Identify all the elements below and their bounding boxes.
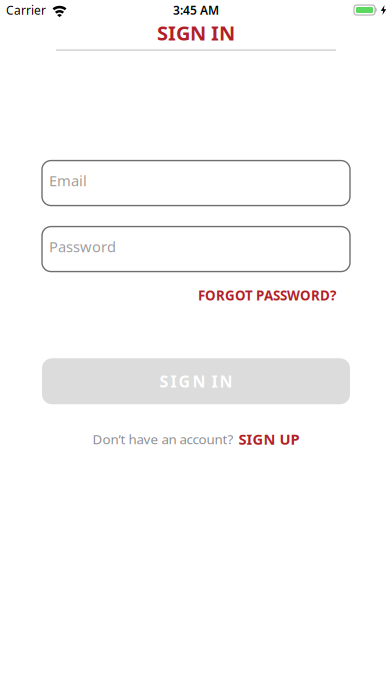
button[interactable]: Sign In: [42, 358, 350, 404]
button[interactable]: SIGN UP: [238, 429, 299, 449]
button[interactable]: Password: [42, 227, 350, 272]
staticText: 3:45 AM: [173, 2, 219, 18]
staticText: FORGOT PASSWORD?: [198, 287, 336, 304]
staticText: SIGN UP: [238, 429, 299, 449]
staticText: Don’t have an account?: [92, 430, 233, 448]
staticText: Email: [49, 171, 87, 190]
staticText: Password: [49, 237, 116, 256]
staticText: S I G N I N: [159, 371, 232, 392]
staticText: SIGN IN: [157, 19, 235, 46]
button[interactable]: Email: [42, 161, 350, 206]
staticText: Carrier: [6, 2, 46, 18]
button[interactable]: FORGOT PASSWORD?: [198, 287, 336, 304]
